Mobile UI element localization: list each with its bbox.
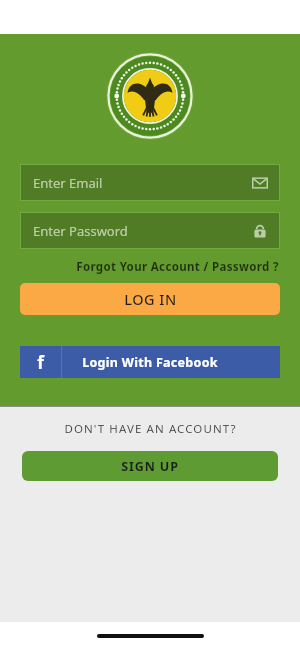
staticText: DON'T HAVE AN ACCOUNT? <box>64 421 237 437</box>
staticText: SIGN UP <box>121 458 179 475</box>
button[interactable]: SIGN UP <box>22 451 278 481</box>
button[interactable]: LOG IN <box>20 283 280 315</box>
staticText: Forgot Your Account / Password ? <box>76 259 279 275</box>
button[interactable]: Enter Email <box>20 164 280 201</box>
staticText: Enter Email <box>33 174 103 192</box>
button[interactable]: Forgot Your Account / Password ? <box>0 258 279 276</box>
other: Password <box>252 223 268 239</box>
button[interactable]: f <box>20 346 280 378</box>
other: Email <box>252 175 268 191</box>
staticText: Enter Password <box>33 222 128 240</box>
staticText: f <box>37 351 44 374</box>
other: Department of Science Service logo <box>106 52 194 140</box>
button[interactable]: Enter Password <box>20 212 280 249</box>
staticText: Login With Facebook <box>82 354 218 371</box>
staticText: LOG IN <box>124 289 177 309</box>
